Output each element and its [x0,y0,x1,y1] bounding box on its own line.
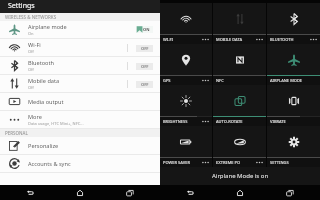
staticText: Off [28,85,34,90]
button[interactable]: Accounts & sync [0,155,160,173]
staticText: Wi-Fi [28,41,41,49]
staticText: Off [28,49,34,54]
staticText: BLUETOOTH [270,37,294,42]
button[interactable]: OFF [136,63,153,70]
button[interactable]: NFC [213,44,266,85]
button[interactable]: AUTO-ROTATE [213,85,266,126]
button[interactable]: Back [10,185,50,200]
button[interactable]: BLUETOOTH [267,3,320,44]
staticText: AIRPLANE MODE [270,78,303,83]
button[interactable]: Back [170,185,210,200]
staticText: Accounts & sync [28,160,71,168]
staticText: ON [143,27,150,32]
button[interactable]: OFF [136,81,153,88]
button[interactable]: More [0,111,160,129]
staticText: Bluetooth [28,59,54,67]
button[interactable]: Settings [0,0,160,13]
staticText: OFF [141,64,149,69]
button[interactable]: Mobile data [0,75,160,93]
button[interactable]: ON [136,26,153,33]
button[interactable]: POWER SAVER [160,126,212,167]
button[interactable]: Personalize [0,137,160,155]
staticText: Personalize [28,142,59,150]
button[interactable]: Bluetooth [0,57,160,75]
staticText: SETTINGS [270,160,289,165]
staticText: Mobile data [28,77,60,85]
staticText: NFC [216,78,224,83]
button[interactable]: Recents [270,185,310,200]
button[interactable]: Wi-Fi [0,39,160,57]
staticText: POWER SAVER [163,160,190,165]
button[interactable]: Home [220,185,260,200]
button[interactable]: GPS [160,44,212,85]
button[interactable]: MOBILE DATA [213,3,266,44]
button[interactable]: EXTREME PO [213,126,266,167]
button[interactable]: Home [60,185,100,200]
staticText: Settings [8,1,35,11]
staticText: OFF [141,82,149,87]
staticText: EXTREME PO [216,160,241,165]
staticText: Media output [28,98,64,106]
staticText: Airplane Mode is on [212,172,269,180]
button[interactable]: SETTINGS [267,126,320,167]
button[interactable]: WI-FI [160,3,212,44]
staticText: WIRELESS & NETWORKS [5,14,57,20]
button[interactable]: Airplane mode [0,21,160,39]
button[interactable]: AIRPLANE MODE [267,44,320,85]
button[interactable]: VIBRATE [267,85,320,126]
button[interactable]: Media output [0,93,160,111]
staticText: On [28,31,34,36]
staticText: BRIGHTNESS [163,119,188,124]
staticText: MOBILE DATA [216,37,243,42]
staticText: PERSONAL [5,130,28,136]
staticText: Airplane mode [28,23,67,31]
staticText: Off [28,67,34,72]
staticText: GPS [163,78,171,83]
button[interactable]: BRIGHTNESS [160,85,212,126]
staticText: OFF [141,46,149,51]
staticText: More [28,113,42,121]
staticText: WI-FI [163,37,173,42]
button[interactable]: Recents [110,185,150,200]
staticText: Data usage, HTC Mini+, NFC... [28,121,84,126]
staticText: VIBRATE [270,119,286,124]
button[interactable]: OFF [136,45,153,52]
staticText: AUTO-ROTATE [216,119,243,124]
